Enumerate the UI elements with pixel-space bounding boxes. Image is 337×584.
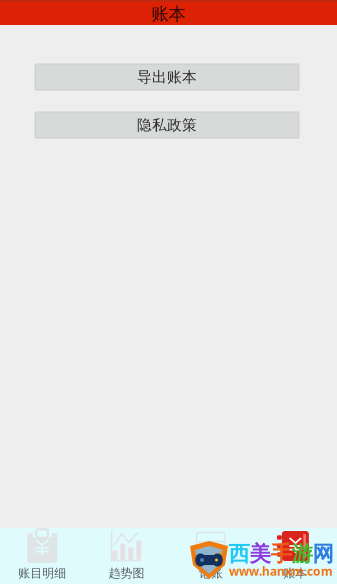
staticText: 账本 <box>283 566 307 581</box>
staticText: 隐私政策 <box>137 116 197 134</box>
button[interactable]: 导出账本 <box>35 64 299 90</box>
button[interactable]: 趋势图 <box>84 528 168 584</box>
staticText: 游 <box>291 541 312 567</box>
staticText: www.hanxm.com <box>229 563 333 579</box>
button[interactable]: 账本 <box>253 528 337 584</box>
staticText: 账本 <box>151 3 185 25</box>
button[interactable]: 记账 <box>168 528 253 584</box>
staticText: 记账 <box>199 566 223 581</box>
staticText: 趋势图 <box>108 566 144 581</box>
staticText: 西 <box>228 541 249 567</box>
staticText: 导出账本 <box>137 68 197 86</box>
staticText: 手 <box>270 541 291 567</box>
staticText: 网 <box>312 541 333 567</box>
staticText: 美 <box>249 541 270 567</box>
button[interactable]: 隐私政策 <box>35 112 299 138</box>
staticText: 账目明细 <box>18 566 66 581</box>
button[interactable]: 账目明细 <box>0 528 84 584</box>
